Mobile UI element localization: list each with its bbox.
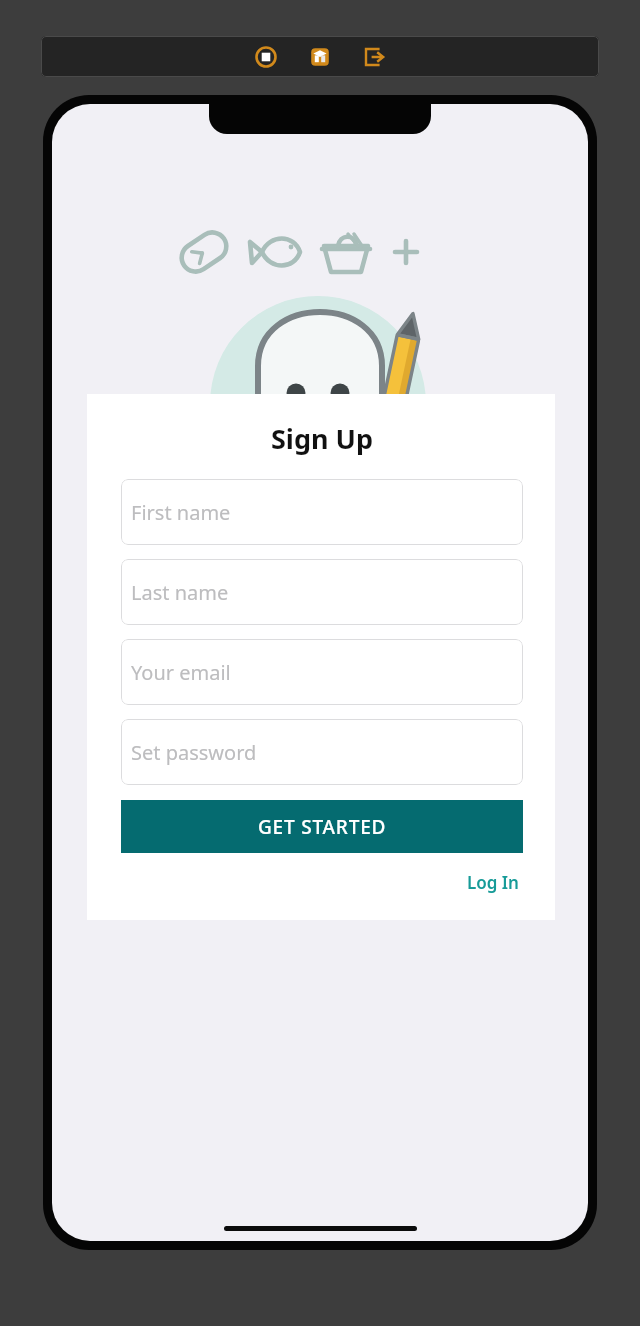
button[interactable]: GET STARTED: [121, 800, 523, 853]
button[interactable]: First name: [121, 479, 523, 545]
staticText: Set password: [131, 739, 257, 766]
staticText: Last name: [131, 579, 229, 606]
button[interactable]: Set password: [121, 719, 523, 785]
staticText: First name: [131, 499, 231, 526]
staticText: GET STARTED: [258, 814, 387, 840]
button[interactable]: Your email: [121, 639, 523, 705]
button[interactable]: Log In: [463, 863, 523, 902]
staticText: Your email: [131, 659, 231, 686]
button[interactable]: Stop: [249, 40, 283, 74]
staticText: Log In: [467, 871, 519, 894]
button[interactable]: Last name: [121, 559, 523, 625]
button[interactable]: Open in new window: [357, 40, 391, 74]
staticText: Sign Up: [121, 420, 523, 457]
button[interactable]: 3D view: [303, 40, 337, 74]
